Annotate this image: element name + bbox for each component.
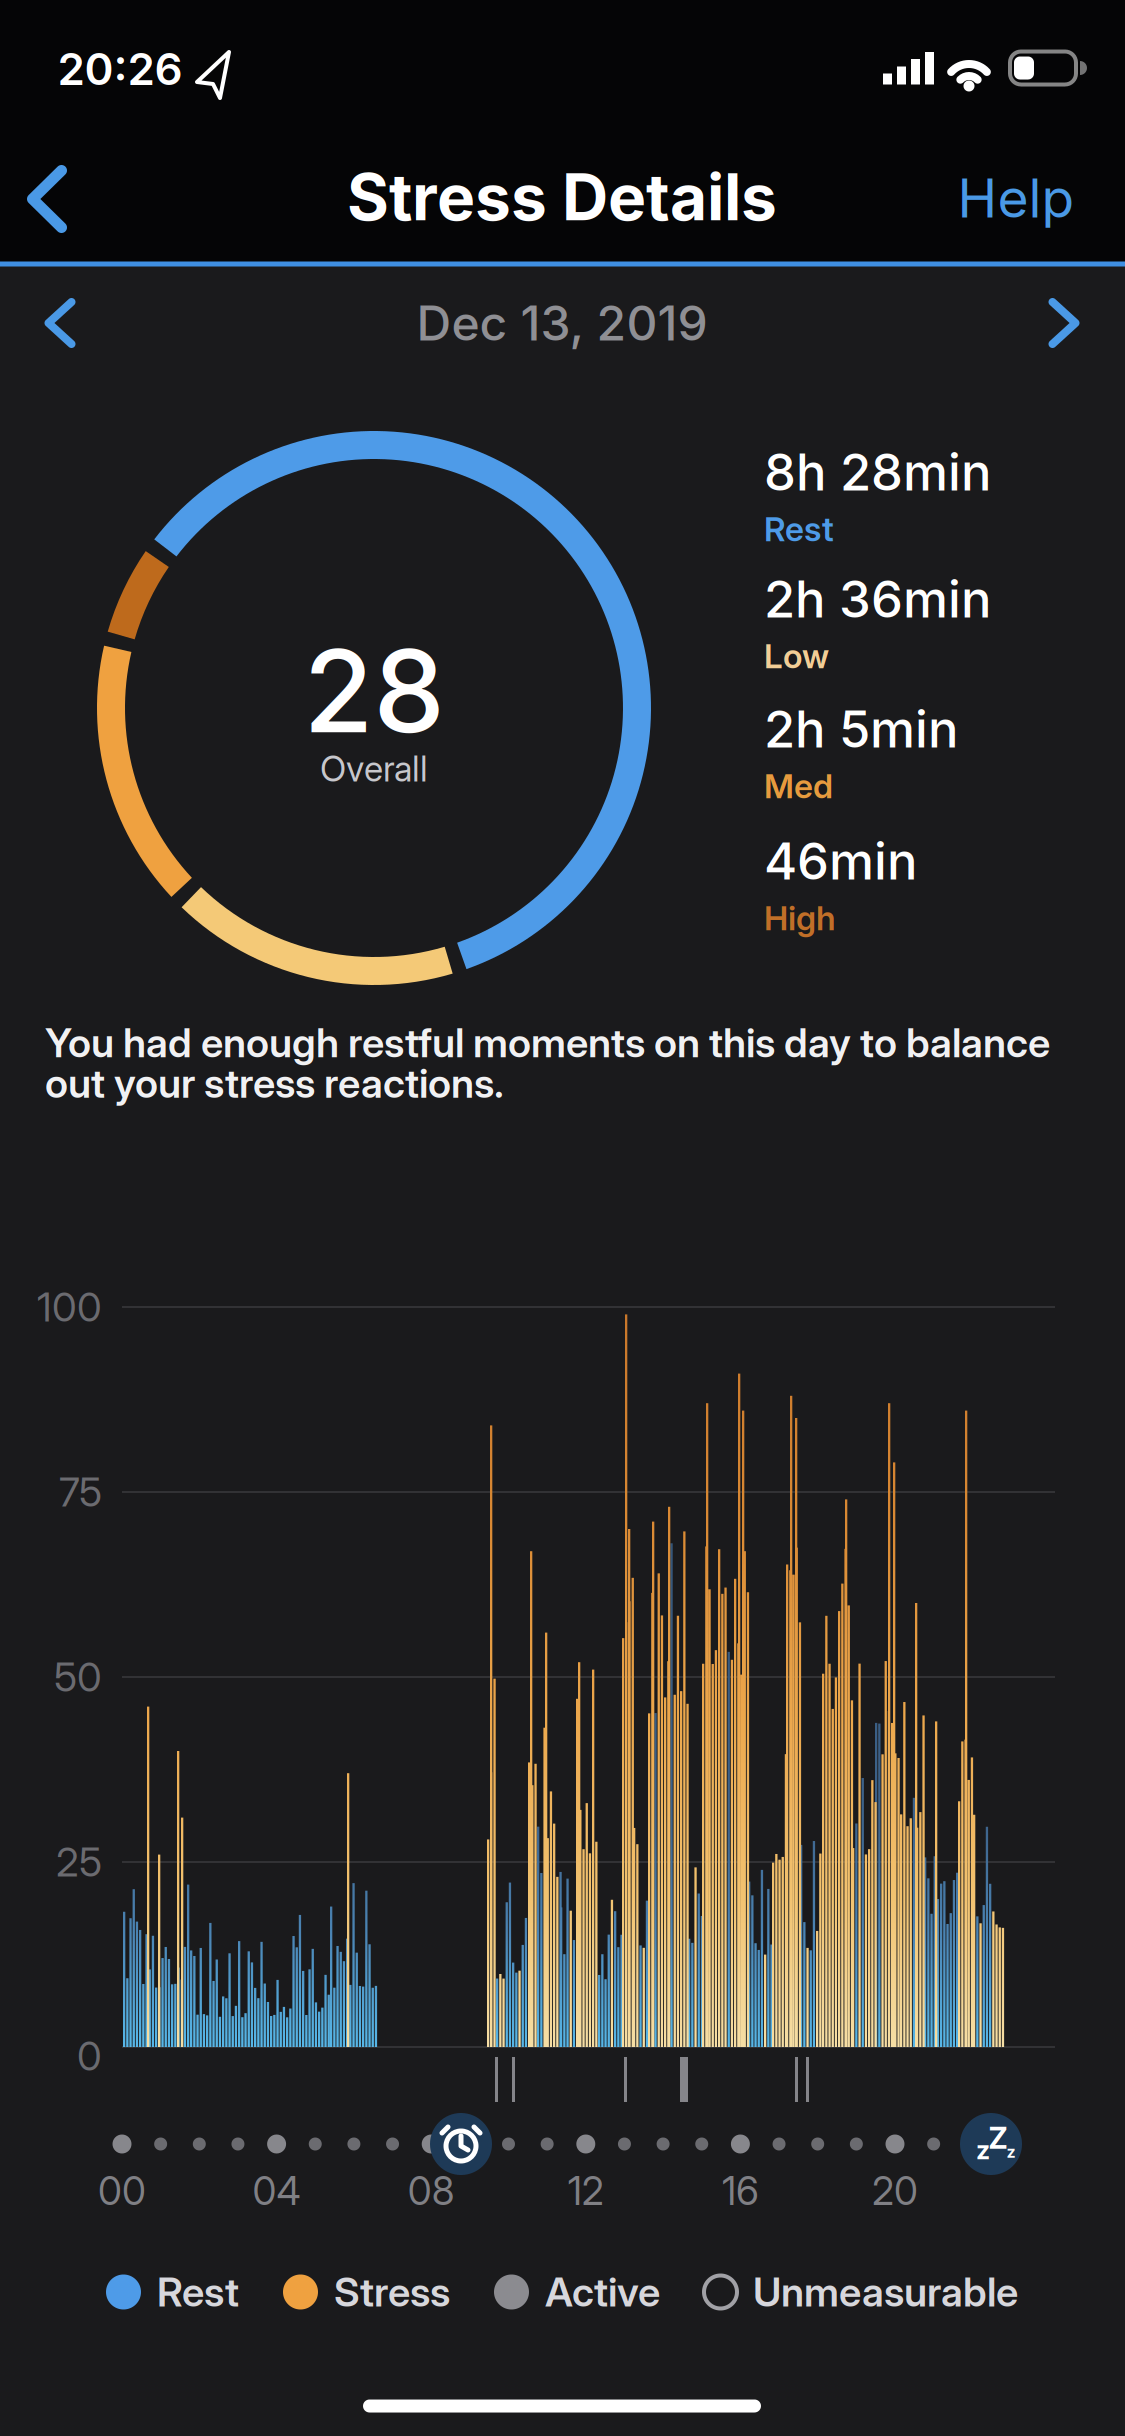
button[interactable]: Back	[2, 140, 91, 257]
staticText: Stress Details	[347, 158, 777, 236]
staticText: 46min	[764, 830, 917, 892]
staticText: Low	[764, 636, 829, 676]
staticText: 28	[303, 622, 444, 759]
staticText: Stress	[334, 2268, 450, 2316]
staticText: Rest	[157, 2268, 239, 2316]
staticText: z	[976, 2135, 990, 2165]
staticText: 04	[253, 2168, 301, 2214]
staticText: 16	[722, 2168, 759, 2214]
staticText: Active	[545, 2268, 660, 2316]
staticText: 8h 28min	[764, 441, 991, 503]
staticText: Help	[957, 166, 1074, 230]
staticText: 0	[77, 2032, 102, 2080]
staticText: 75	[59, 1468, 102, 1516]
staticText: Unmeasurable	[753, 2268, 1018, 2316]
staticText: Rest	[764, 509, 834, 549]
staticText: Overall	[320, 748, 428, 790]
staticText: 100	[37, 1283, 102, 1331]
staticText: Dec 13, 2019	[416, 294, 707, 352]
staticText: 12	[568, 2168, 604, 2214]
staticText: 50	[54, 1653, 102, 1701]
staticText: You had enough restful moments on this d…	[45, 1019, 1050, 1067]
staticText: z	[1006, 2142, 1015, 2162]
button[interactable]: Help	[906, 143, 1125, 253]
staticText: High	[764, 898, 836, 938]
staticText: Med	[764, 766, 833, 806]
staticText: 25	[56, 1838, 102, 1886]
staticText: 08	[408, 2168, 455, 2214]
button[interactable]: Previous day	[20, 274, 99, 372]
staticText: 2h 5min	[764, 698, 958, 760]
staticText: 2h 36min	[764, 568, 991, 630]
staticText: out your stress reactions.	[45, 1059, 504, 1107]
staticText: 20:26	[57, 42, 182, 96]
button[interactable]: Next day	[1024, 274, 1103, 372]
staticText: 00	[98, 2168, 146, 2214]
staticText: 20	[872, 2168, 918, 2214]
staticText: Z	[988, 2120, 1007, 2156]
